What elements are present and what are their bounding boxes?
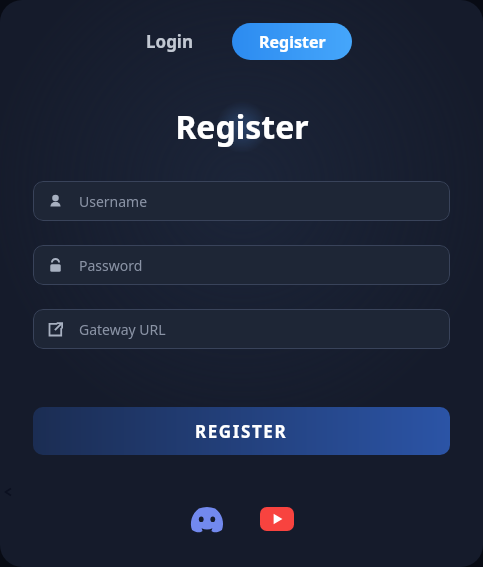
- button[interactable]: Register: [232, 23, 352, 60]
- button[interactable]: YouTube: [257, 503, 297, 535]
- button[interactable]: Username: [33, 181, 450, 221]
- staticText: Register: [175, 105, 309, 149]
- button[interactable]: Discord: [187, 503, 227, 535]
- staticText: Password: [79, 256, 143, 275]
- staticText: Register: [259, 31, 326, 53]
- staticText: REGISTER: [195, 420, 288, 443]
- button[interactable]: Password: [33, 245, 450, 285]
- staticText: Username: [79, 192, 148, 211]
- button[interactable]: REGISTER: [33, 407, 450, 455]
- button[interactable]: Gateway URL: [33, 309, 450, 349]
- button[interactable]: Login: [132, 22, 208, 61]
- staticText: Login: [146, 30, 194, 53]
- staticText: Gateway URL: [79, 320, 166, 339]
